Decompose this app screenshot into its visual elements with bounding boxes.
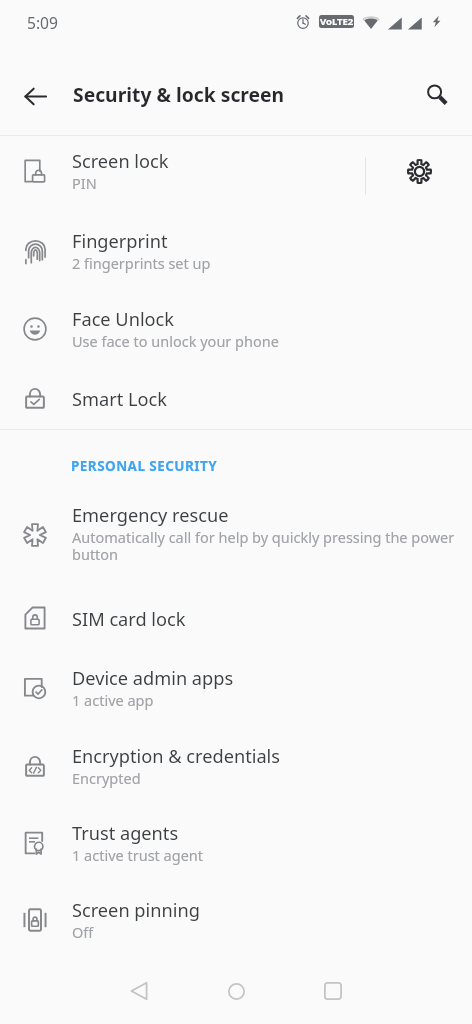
staticText: 1 active trust agent [72, 847, 204, 864]
button[interactable]: Smart Lock [0, 372, 472, 429]
staticText: PIN [72, 175, 97, 192]
button[interactable]: Device admin apps [0, 653, 472, 731]
button[interactable]: Face Unlock [0, 294, 472, 372]
staticText: Screen pinning [72, 898, 200, 923]
staticText: 5:09 [27, 12, 58, 33]
button[interactable]: Back [115, 967, 163, 1015]
button[interactable]: Encryption & credentials [0, 731, 472, 808]
staticText: Fingerprint [72, 229, 168, 254]
button[interactable]: Screen lock settings [366, 136, 472, 216]
staticText: PERSONAL SECURITY [71, 457, 218, 475]
staticText: Device admin apps [72, 666, 234, 691]
staticText: Use face to unlock your phone [72, 333, 279, 350]
staticText: Off [72, 924, 94, 941]
staticText: Automatically call for help by quickly p… [72, 529, 459, 563]
staticText: Encryption & credentials [72, 744, 281, 769]
button[interactable]: Screen pinning [0, 885, 472, 963]
button[interactable]: Home [212, 967, 260, 1015]
staticText: Security & lock screen [73, 81, 285, 107]
button[interactable]: Screen lock [0, 136, 472, 216]
button[interactable]: Fingerprint [0, 216, 472, 294]
button[interactable]: Search [413, 71, 461, 119]
staticText: Screen lock [72, 149, 169, 174]
staticText: Encrypted [72, 770, 141, 787]
staticText: Face Unlock [72, 307, 175, 332]
button[interactable]: Recent apps [309, 967, 357, 1015]
button[interactable]: Emergency rescue [0, 490, 472, 592]
staticText: Smart Lock [72, 387, 167, 412]
staticText: 1 active app [72, 692, 154, 709]
staticText: VoLTE2 [320, 15, 354, 28]
staticText: 2 fingerprints set up [72, 255, 211, 272]
button[interactable]: Navigate up [11, 72, 59, 120]
button[interactable]: Trust agents [0, 808, 472, 885]
staticText: SIM card lock [72, 607, 186, 632]
staticText: Emergency rescue [72, 503, 229, 528]
staticText: Trust agents [72, 821, 179, 846]
button[interactable]: SIM card lock [0, 592, 472, 653]
